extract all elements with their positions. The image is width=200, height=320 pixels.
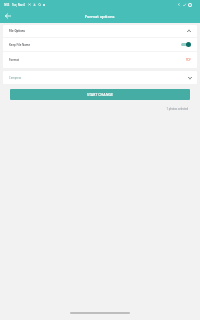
staticText: START CHANGE bbox=[87, 92, 114, 97]
staticText: Keep File Name bbox=[9, 43, 31, 47]
button[interactable]: Keep File Name toggle bbox=[181, 42, 191, 47]
button[interactable]: Back bbox=[3, 11, 13, 21]
staticText: 9:53 bbox=[4, 3, 10, 7]
staticText: 1 photos selected bbox=[0, 107, 188, 111]
staticText: Tue, Nov 4 bbox=[12, 3, 25, 7]
staticText: PDF bbox=[186, 58, 191, 62]
button[interactable]: START CHANGE bbox=[10, 89, 190, 100]
button[interactable]: Compress bbox=[3, 71, 197, 84]
staticText: File Options bbox=[9, 29, 25, 33]
staticText: Compress bbox=[9, 76, 22, 80]
staticText: Format bbox=[9, 58, 19, 62]
button[interactable]: Format bbox=[3, 52, 197, 68]
staticText: Format options bbox=[85, 14, 115, 19]
button[interactable]: Keep File Name bbox=[3, 38, 197, 51]
button[interactable]: File Options bbox=[3, 25, 197, 37]
